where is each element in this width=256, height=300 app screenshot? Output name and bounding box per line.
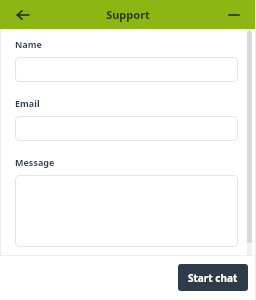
button[interactable]: Message [15, 175, 238, 247]
button[interactable]: Email [15, 116, 238, 141]
staticText: Name [15, 38, 42, 50]
staticText: Support [106, 7, 150, 22]
button[interactable]: Back [10, 2, 36, 28]
button[interactable]: Minimize [222, 3, 246, 27]
button[interactable]: Start chat [178, 264, 248, 291]
staticText: Email [15, 97, 40, 109]
staticText: Start chat [188, 271, 238, 285]
button[interactable]: Name [15, 57, 238, 82]
staticText: Message [15, 156, 55, 168]
